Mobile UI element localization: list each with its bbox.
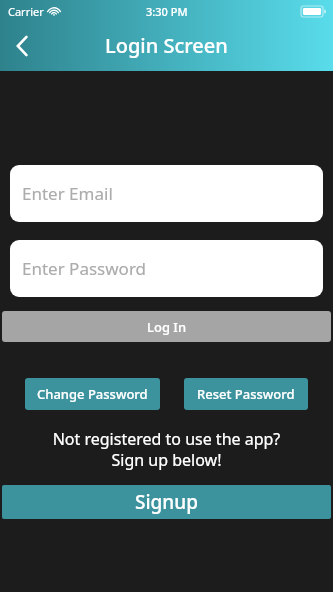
staticText: Enter Email <box>22 182 113 205</box>
staticText: Signup <box>135 489 198 515</box>
button[interactable]: Enter Password <box>10 240 323 297</box>
button[interactable]: Signup <box>2 485 331 519</box>
staticText: Enter Password <box>22 257 147 280</box>
button[interactable]: Change Password <box>25 378 160 410</box>
staticText: Reset Password <box>197 385 295 403</box>
staticText: Change Password <box>37 385 148 403</box>
staticText: Carrier <box>8 4 44 19</box>
button[interactable]: Back <box>0 24 44 68</box>
staticText: Login Screen <box>105 32 228 59</box>
staticText: Log In <box>147 318 187 336</box>
button[interactable]: Enter Email <box>10 165 323 222</box>
staticText: 3:30 PM <box>146 4 188 19</box>
button[interactable]: Log In <box>2 311 331 342</box>
staticText: Not registered to use the app? Sign up b… <box>0 428 333 471</box>
button[interactable]: Reset Password <box>184 378 308 410</box>
